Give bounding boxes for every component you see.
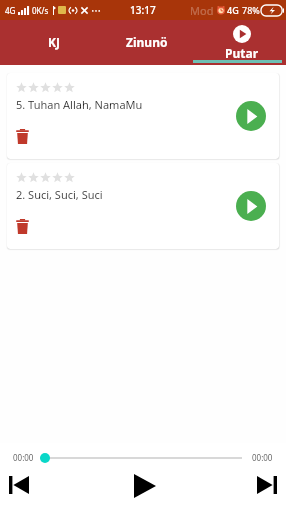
staticText: 00:00 [252, 452, 273, 463]
staticText: KJ [48, 34, 60, 50]
button[interactable]: Play [236, 191, 266, 221]
staticText: 13:17 [130, 3, 156, 17]
staticText: 00:00 [13, 452, 34, 463]
staticText: Putar [225, 45, 259, 61]
staticText: 2. Suci, Suci, Suci [16, 187, 103, 202]
button[interactable]: Zinunö [100, 20, 193, 65]
staticText: 78% [242, 4, 260, 16]
button[interactable]: Play [129, 470, 161, 502]
staticText: 4G [227, 4, 239, 16]
button[interactable]: Play [236, 101, 266, 131]
button[interactable]: 5. Tuhan Allah, NamaMu [7, 73, 279, 159]
button[interactable]: KJ [7, 20, 100, 65]
button[interactable]: Previous [6, 469, 32, 501]
button[interactable]: Next [254, 469, 280, 501]
button[interactable]: Delete [16, 219, 29, 234]
staticText: Mod [190, 3, 214, 18]
staticText: 4G [5, 5, 16, 16]
staticText: 0K/s [32, 5, 49, 16]
button[interactable]: Putar [193, 20, 286, 65]
staticText: 5. Tuhan Allah, NamaMu [16, 97, 143, 112]
button[interactable]: 2. Suci, Suci, Suci [7, 163, 279, 249]
button[interactable]: Delete [16, 129, 29, 144]
staticText: Zinunö [126, 34, 168, 50]
